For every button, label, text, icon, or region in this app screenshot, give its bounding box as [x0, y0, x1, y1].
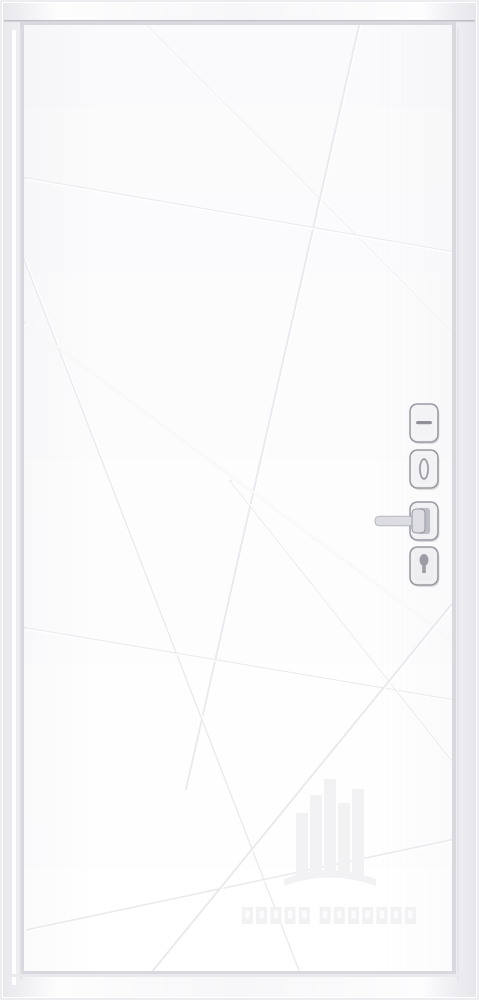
other: White steel entrance door with geometric…	[0, 0, 479, 1000]
